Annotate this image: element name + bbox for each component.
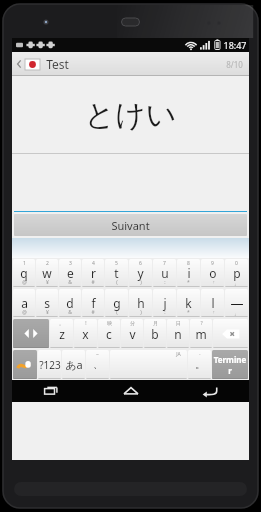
staticText: l (211, 295, 215, 311)
button[interactable]: · (188, 350, 211, 379)
staticText: n (174, 326, 182, 342)
staticText: & (68, 309, 72, 316)
button[interactable]: 」 (225, 289, 248, 317)
staticText: v (129, 326, 136, 342)
button[interactable]: Terminer (212, 350, 248, 379)
staticText: d (66, 295, 74, 311)
button[interactable]: Switch input (13, 350, 37, 379)
staticText: 」 (234, 280, 239, 286)
button[interactable]: あa (62, 350, 85, 379)
button[interactable]: 6 (129, 259, 152, 287)
staticText: 「 (210, 280, 215, 286)
button[interactable]: 9 (201, 259, 224, 287)
staticText: s (44, 295, 50, 311)
staticText: 。 (59, 320, 64, 326)
staticText: z (59, 326, 65, 342)
button[interactable]: & (59, 289, 81, 317)
button[interactable]: ¥ (36, 289, 58, 317)
staticText: ) (140, 309, 142, 316)
staticText: u (161, 265, 169, 281)
staticText: Suivant (111, 218, 150, 233)
button[interactable]: Recents (12, 380, 91, 402)
button[interactable]: 月 (144, 319, 166, 348)
button[interactable]: 8 (177, 259, 200, 287)
staticText: # (91, 309, 95, 316)
staticText: · (199, 351, 201, 358)
staticText: ~ (96, 351, 99, 358)
button[interactable]: Back (12, 52, 43, 76)
staticText: ¥ (46, 279, 49, 286)
button[interactable]: Move cursor (13, 319, 49, 348)
button[interactable]: ! (74, 319, 97, 348)
button[interactable]: ( (105, 289, 128, 317)
button[interactable]: 分 (121, 319, 143, 348)
staticText: 6 (139, 260, 142, 267)
staticText: a (21, 295, 28, 311)
staticText: 月 (153, 320, 158, 326)
button[interactable]: Suivant (14, 214, 247, 236)
staticText: y (137, 265, 144, 281)
button[interactable] (12, 154, 249, 212)
staticText: 18:47 (223, 39, 247, 51)
button[interactable]: 4 (82, 259, 104, 287)
button[interactable]: 2 (36, 259, 58, 287)
button[interactable]: Home (91, 380, 170, 402)
staticText: i (187, 265, 191, 281)
button[interactable]: 日 (167, 319, 189, 348)
button[interactable]: @ (13, 289, 35, 317)
button[interactable]: : (153, 289, 176, 317)
staticText: 8/10 (226, 59, 243, 70)
staticText: r (91, 265, 96, 281)
staticText: 7 (163, 260, 166, 267)
staticText: * (187, 279, 190, 286)
staticText: 。 (195, 358, 205, 371)
staticText: 5 (115, 260, 118, 267)
staticText: ) (140, 279, 142, 286)
staticText: e (67, 265, 74, 281)
button[interactable]: Back (170, 380, 249, 402)
staticText: 2 (46, 260, 49, 267)
staticText: 映 (107, 320, 112, 326)
staticText: k (185, 295, 192, 311)
button[interactable]: Backspace (213, 319, 248, 348)
button[interactable]: # (82, 289, 104, 317)
button[interactable]: 7 (153, 259, 176, 287)
button[interactable]: 0 (225, 259, 248, 287)
staticText: p (233, 265, 241, 281)
staticText: h (137, 295, 145, 311)
button[interactable]: 映 (98, 319, 120, 348)
staticText: x (82, 326, 89, 342)
staticText: f (91, 295, 96, 311)
button[interactable]: ?123 (38, 350, 61, 379)
staticText: 3 (69, 260, 72, 267)
button[interactable]: ~ (86, 350, 109, 379)
staticText: 、 (93, 358, 103, 371)
staticText: * (187, 309, 190, 316)
staticText: 日 (176, 320, 181, 326)
staticText: 4 (92, 260, 95, 267)
staticText: 8 (187, 260, 190, 267)
button[interactable]: 「 (201, 289, 224, 317)
staticText: ¥ (46, 309, 49, 316)
staticText: Terminer (212, 354, 248, 376)
button[interactable]: 5 (105, 259, 128, 287)
button[interactable]: ? (190, 319, 212, 348)
staticText: とけい (84, 96, 177, 134)
button[interactable]: 。 (50, 319, 73, 348)
staticText: ?123 (39, 358, 61, 372)
staticText: — (230, 294, 244, 312)
button[interactable]: Space (110, 350, 187, 379)
staticText: c (106, 326, 112, 342)
staticText: 」 (234, 310, 239, 316)
staticText: Test (46, 56, 69, 72)
staticText: @ (22, 309, 27, 316)
staticText: o (209, 265, 217, 281)
button[interactable]: 3 (59, 259, 81, 287)
staticText: j (163, 295, 167, 311)
button[interactable]: ) (129, 289, 152, 317)
button[interactable]: * (177, 289, 200, 317)
staticText: : (164, 309, 166, 316)
staticText: g (113, 295, 121, 311)
staticText: 0 (235, 260, 238, 267)
button[interactable]: 1 (13, 259, 35, 287)
